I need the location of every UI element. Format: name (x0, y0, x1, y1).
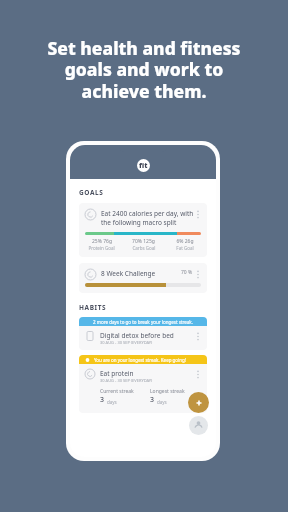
button[interactable]: 8 Week Challenge (79, 263, 207, 293)
staticText: fit (139, 161, 148, 171)
staticText: Digital detox before bed (100, 331, 174, 340)
staticText: days (107, 399, 117, 405)
staticText: Longest streak (150, 388, 185, 395)
staticText: 8 Week Challenge (101, 269, 181, 278)
staticText: 70 % (181, 269, 193, 276)
staticText: Set health and fitness goals and work to… (47, 36, 241, 103)
staticText: Current streak (100, 388, 134, 395)
button[interactable]: Add (188, 392, 209, 413)
staticText: 30 AUG - 30 SEP (EVERYDAY) (100, 340, 153, 345)
staticText: 25% 76g (92, 238, 112, 245)
staticText: 3 (150, 395, 155, 405)
staticText: 2 more days to go to break your longest … (93, 319, 193, 325)
button[interactable]: Profile (189, 416, 208, 435)
button[interactable]: You are on your longest streak. Keep goi… (79, 355, 207, 413)
staticText: You are on your longest streak. Keep goi… (94, 357, 187, 363)
button[interactable]: Eat 2400 calories per day, with the foll… (79, 203, 207, 257)
staticText: Carbs Goal (132, 245, 156, 251)
staticText: 30 AUG - 30 SEP (EVERYDAY) (100, 378, 153, 383)
button[interactable]: 2 more days to go to break your longest … (79, 317, 207, 350)
staticText: 70% 125g (132, 238, 155, 245)
staticText: HABITS (79, 303, 107, 312)
staticText: 6% 26g (176, 238, 194, 245)
staticText: days (157, 399, 167, 405)
staticText: Protein Goal (88, 245, 115, 251)
staticText: Eat 2400 calories per day, with the foll… (101, 209, 195, 227)
staticText: Eat protein (100, 369, 134, 378)
staticText: 3 (100, 395, 105, 405)
staticText: GOALS (79, 188, 104, 197)
staticText: Fat Goal (176, 245, 194, 251)
